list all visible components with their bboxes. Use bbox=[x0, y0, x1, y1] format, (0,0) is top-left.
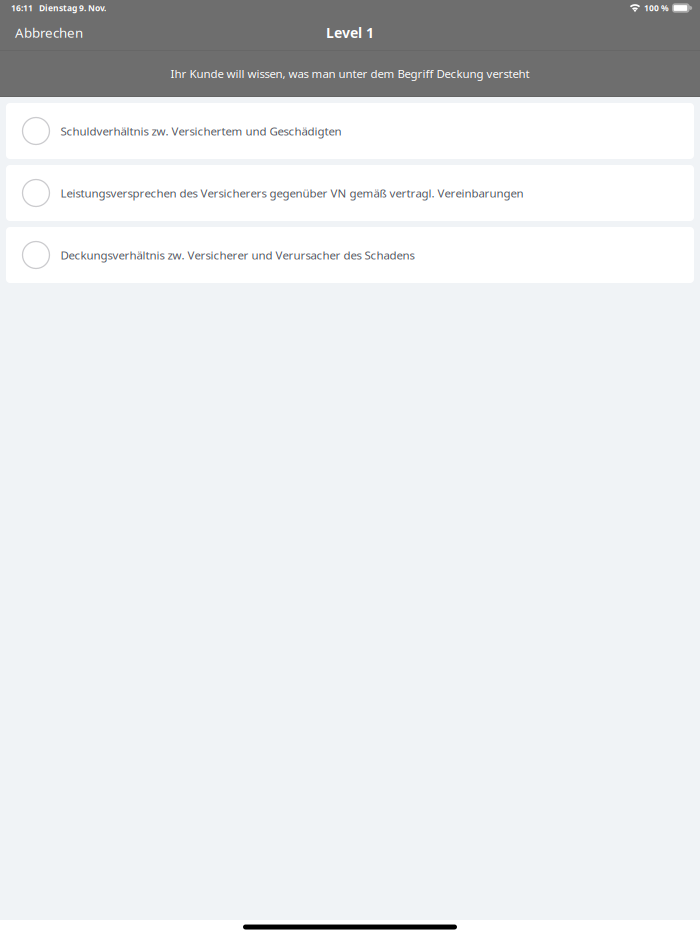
staticText: Deckungsverhältnis zw. Versicherer und V… bbox=[60, 247, 414, 263]
staticText: Dienstag 9. Nov. bbox=[39, 2, 106, 14]
staticText: Schuldverhältnis zw. Versichertem und Ge… bbox=[60, 123, 341, 139]
button[interactable]: Deckungsverhältnis zw. Versicherer und V… bbox=[6, 227, 694, 283]
button[interactable]: Abbrechen bbox=[11, 18, 87, 47]
button[interactable]: Leistungsversprechen des Versicherers ge… bbox=[6, 165, 694, 221]
staticText: Ihr Kunde will wissen, was man unter dem… bbox=[170, 66, 529, 81]
staticText: Level 1 bbox=[326, 23, 374, 42]
staticText: 16:11 bbox=[11, 2, 33, 14]
button[interactable]: Schuldverhältnis zw. Versichertem und Ge… bbox=[6, 103, 694, 159]
staticText: Leistungsversprechen des Versicherers ge… bbox=[60, 185, 523, 201]
staticText: Abbrechen bbox=[15, 23, 83, 42]
staticText: 100 % bbox=[644, 2, 669, 14]
